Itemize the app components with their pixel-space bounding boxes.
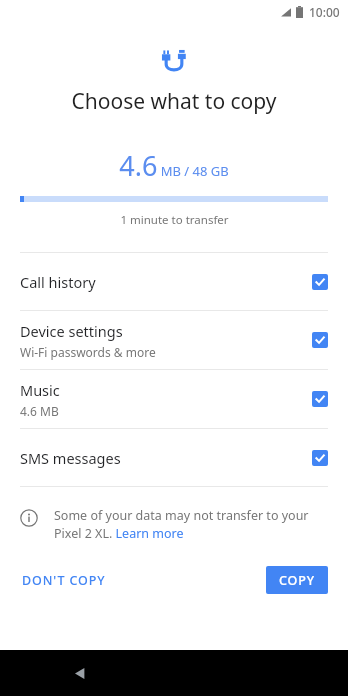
staticText: COPY bbox=[279, 572, 316, 589]
staticText: Choose what to copy bbox=[71, 87, 277, 116]
staticText: DON'T COPY bbox=[22, 572, 106, 589]
button[interactable]: Back bbox=[64, 657, 96, 689]
staticText: 1 minute to transfer bbox=[120, 212, 229, 228]
staticText: 4.6 MB bbox=[20, 403, 59, 419]
button[interactable]: Selected bbox=[312, 391, 328, 407]
other: Information bbox=[20, 509, 38, 527]
button[interactable]: COPY bbox=[266, 566, 328, 594]
button[interactable]: Call history bbox=[0, 253, 348, 310]
button[interactable]: Music bbox=[0, 370, 348, 428]
staticText: SMS messages bbox=[20, 448, 121, 468]
staticText: Some of your data may not transfer to yo… bbox=[54, 507, 328, 542]
button[interactable]: DON'T COPY bbox=[20, 564, 108, 597]
staticText: Device settings bbox=[20, 321, 123, 341]
staticText: Music bbox=[20, 380, 60, 400]
button[interactable]: Device settings bbox=[0, 311, 348, 369]
staticText: Wi-Fi passwords & more bbox=[20, 344, 156, 360]
button[interactable]: Selected bbox=[312, 274, 328, 290]
staticText: Call history bbox=[20, 272, 96, 292]
button[interactable]: SMS messages bbox=[0, 429, 348, 486]
staticText: 10:00 bbox=[309, 4, 340, 20]
button[interactable]: Selected bbox=[312, 332, 328, 348]
staticText: 4.6 MB / 48 GB bbox=[119, 147, 229, 184]
button[interactable]: Selected bbox=[312, 450, 328, 466]
